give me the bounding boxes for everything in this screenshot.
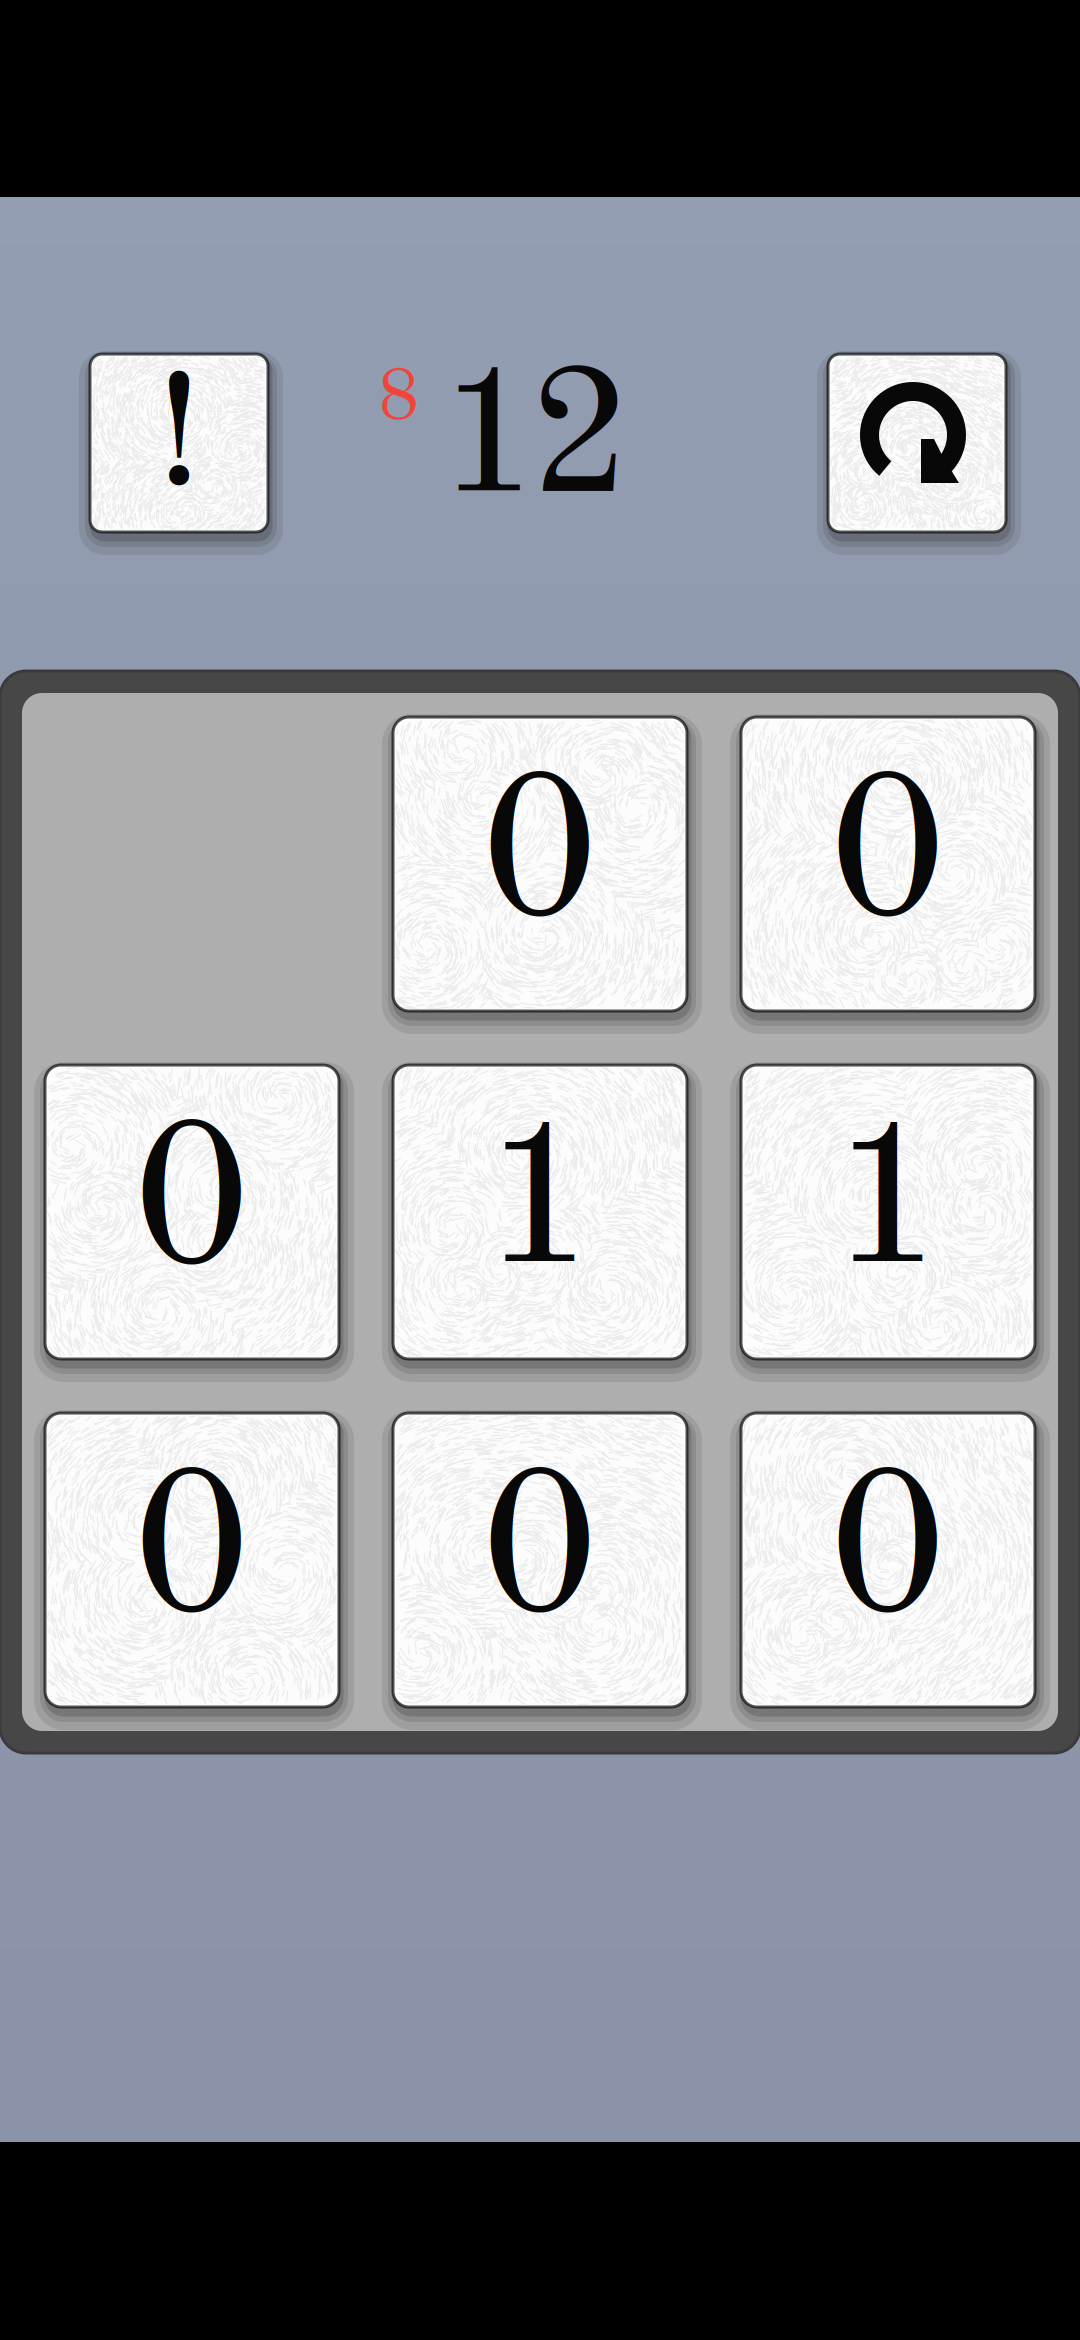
staticText: ! bbox=[156, 360, 201, 522]
button[interactable]: Hint bbox=[90, 354, 268, 532]
button[interactable]: 1 bbox=[741, 1065, 1035, 1359]
button[interactable]: 0 bbox=[393, 1413, 687, 1707]
staticText: 0 bbox=[481, 759, 599, 961]
staticText: 0 bbox=[829, 1455, 947, 1657]
staticText: 0 bbox=[829, 759, 947, 961]
button[interactable]: 0 bbox=[393, 717, 687, 1011]
button[interactable]: 0 bbox=[45, 1065, 339, 1359]
button[interactable]: 1 bbox=[393, 1065, 687, 1359]
staticText: 1 bbox=[481, 1107, 599, 1309]
button[interactable]: Restart bbox=[828, 354, 1006, 532]
staticText: 12 bbox=[437, 353, 632, 533]
staticText: 0 bbox=[133, 1107, 251, 1309]
staticText: 1 bbox=[829, 1107, 947, 1309]
staticText: 0 bbox=[481, 1455, 599, 1657]
button[interactable]: 0 bbox=[45, 1413, 339, 1707]
button[interactable]: 0 bbox=[741, 1413, 1035, 1707]
staticText: 8 bbox=[378, 364, 420, 436]
button[interactable]: 0 bbox=[741, 717, 1035, 1011]
staticText: 0 bbox=[133, 1455, 251, 1657]
